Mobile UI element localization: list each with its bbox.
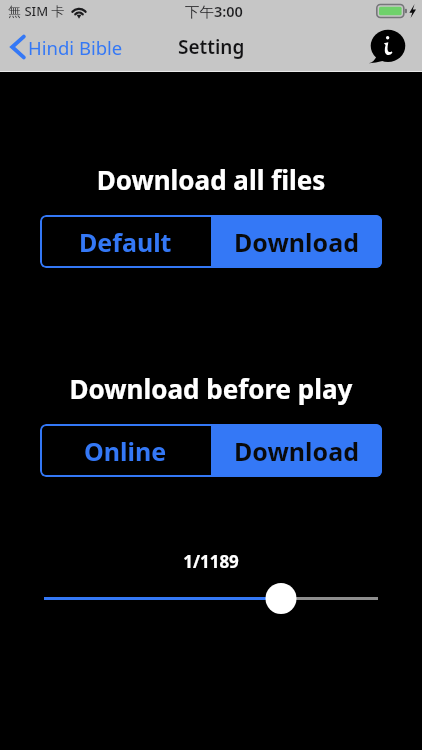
staticText: Hindi Bible: [28, 35, 123, 60]
staticText: 1/1189: [0, 550, 422, 573]
staticText: Download all files: [0, 162, 422, 197]
button[interactable]: Online: [40, 424, 211, 477]
button[interactable]: Default: [40, 215, 211, 268]
staticText: Default: [79, 225, 172, 259]
staticText: Download: [234, 225, 359, 259]
button[interactable]: Download: [211, 215, 382, 268]
button[interactable]: Info: [368, 27, 408, 67]
staticText: 下午3:00: [185, 1, 243, 21]
staticText: Online: [84, 434, 167, 468]
button[interactable]: Download: [211, 424, 382, 477]
staticText: 無 SIM 卡: [8, 2, 65, 20]
button[interactable]: Chapter slider: [0, 581, 422, 615]
button[interactable]: Hindi Bible: [0, 29, 133, 65]
staticText: Setting: [178, 34, 245, 60]
staticText: Download: [234, 434, 359, 468]
staticText: Download before play: [0, 371, 422, 406]
